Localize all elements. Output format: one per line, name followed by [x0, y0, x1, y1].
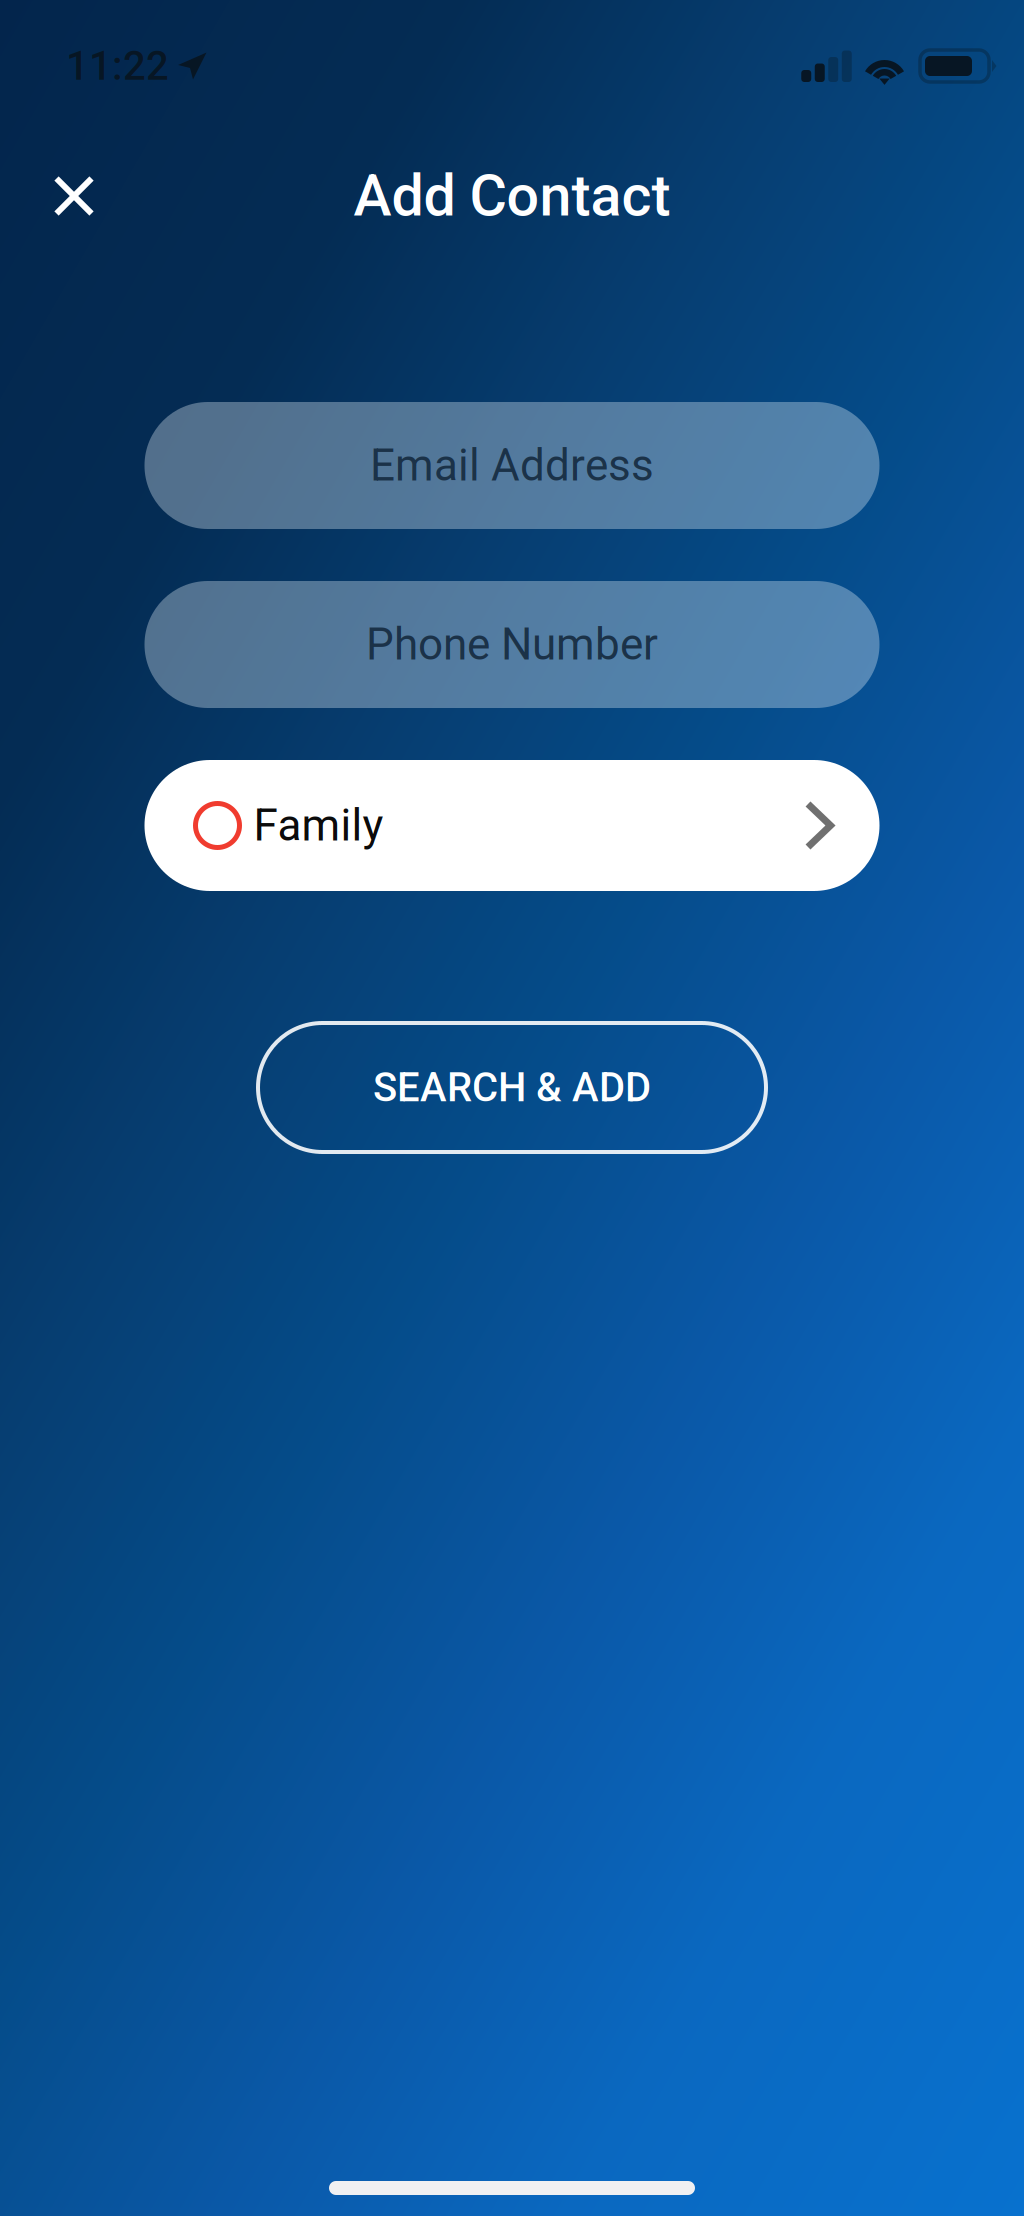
- button[interactable]: Email Address: [144, 402, 879, 529]
- staticText: SEARCH & ADD: [373, 1064, 651, 1111]
- staticText: Add Contact: [353, 162, 670, 230]
- button[interactable]: Family: [144, 760, 879, 891]
- staticText: Email Address: [370, 440, 654, 491]
- button[interactable]: SEARCH & ADD: [258, 1023, 766, 1152]
- button[interactable]: Close: [32, 154, 116, 238]
- staticText: 11:22: [66, 43, 169, 89]
- button[interactable]: Phone Number: [144, 581, 879, 708]
- staticText: Phone Number: [366, 619, 658, 670]
- staticText: Family: [253, 800, 383, 851]
